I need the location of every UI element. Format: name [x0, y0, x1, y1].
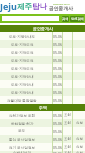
staticText: 05-06: [53, 121, 62, 126]
staticText: 소방시설업: [13, 151, 31, 153]
staticText: 신청: [76, 137, 83, 141]
staticText: 05-06: [53, 151, 62, 153]
staticText: 05-06: [53, 113, 62, 118]
staticText: 조회: [64, 151, 71, 153]
button[interactable]: 하천점용·허가: [0, 119, 85, 127]
staticText: 도로·지명안내도: [9, 34, 36, 39]
staticText: 도로·지적도면: [11, 42, 34, 47]
staticText: 검색: [62, 17, 69, 21]
staticText: 도로·지적안내: [11, 90, 34, 95]
staticText: 상세검색: [71, 17, 84, 21]
staticText: 05-06: [53, 98, 62, 103]
staticText: 도로·지적안내: [11, 74, 34, 79]
staticText: 05-06: [53, 50, 62, 55]
staticText: 05-06: [53, 42, 62, 47]
staticText: 공인중개사: [49, 5, 73, 11]
staticText: 공무: [18, 129, 26, 134]
staticText: 05-06: [53, 129, 62, 134]
staticText: 도로·지적안내: [11, 82, 34, 87]
staticText: www.jeju.go.kr: [53, 2, 70, 5]
button[interactable]: 도로·지적안내: [0, 72, 85, 80]
button[interactable]: 도로·지적안내: [0, 80, 85, 88]
button[interactable]: 전기 공사업정보: [0, 143, 85, 151]
staticText: 통신 공사업정보: [9, 137, 36, 142]
button[interactable]: 건물대장 통합열람: [0, 96, 85, 104]
staticText: 건물대장 통합열람: [7, 98, 37, 103]
button[interactable]: 도로·지적도면: [0, 64, 85, 72]
staticText: Jeju: [0, 0, 17, 12]
staticText: 05-06: [53, 66, 62, 71]
staticText: 05-06: [53, 74, 62, 79]
button[interactable]: 도로·지적안내: [0, 88, 85, 96]
button[interactable]: 도로·지적도면: [0, 48, 85, 56]
button[interactable]: 통신 공사업정보: [0, 135, 85, 143]
staticText: 신청: [76, 145, 83, 149]
staticText: 전기 공사업정보: [9, 145, 36, 150]
staticText: 도로·지적도면: [11, 50, 34, 55]
staticText: 05-06: [53, 137, 62, 142]
staticText: 인허가정보 조회: [9, 113, 36, 118]
staticText: 도로·지적도면: [11, 66, 34, 71]
staticText: 탐나: [32, 2, 47, 11]
staticText: 신청: [76, 151, 83, 153]
staticText: 05-06: [53, 90, 62, 95]
staticText: 공인중개사: [33, 26, 53, 31]
button[interactable]: 상세검색: [70, 16, 84, 22]
staticText: 신청: [76, 121, 83, 125]
staticText: 05-06: [53, 82, 62, 87]
button[interactable]: 소방시설업: [0, 151, 85, 153]
staticText: 조회: [64, 137, 71, 141]
button[interactable]: 공무: [0, 127, 85, 135]
button[interactable]: 인허가정보 조회: [0, 111, 85, 119]
staticText: 도로·지적도면: [11, 58, 34, 63]
staticText: 조회: [64, 113, 71, 117]
staticText: 05-06: [53, 145, 62, 150]
staticText: 조회: [64, 145, 71, 149]
button[interactable]: 검색: [62, 16, 69, 22]
staticText: 하천점용·허가: [11, 121, 34, 126]
staticText: 조회: [64, 121, 71, 125]
button[interactable]: 도로·지적도면: [0, 40, 85, 48]
button[interactable]: 도로·지적도면: [0, 56, 85, 64]
staticText: 05-06: [53, 58, 62, 63]
staticText: 제주: [17, 2, 32, 11]
staticText: 주택: [39, 105, 47, 110]
button[interactable]: 도로·지명안내도: [0, 32, 85, 40]
staticText: 05-06: [53, 34, 62, 39]
